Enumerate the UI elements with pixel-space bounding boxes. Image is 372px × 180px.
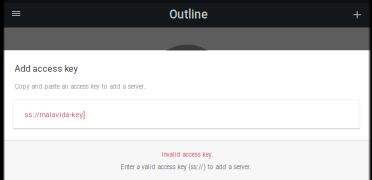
staticText: Copy and paste an access key to add a se… — [14, 83, 145, 90]
staticText: Invalid access key. — [161, 151, 213, 158]
staticText: Enter a valid access key (ss://) to add … — [120, 163, 251, 171]
staticText: Outline — [169, 7, 207, 21]
button[interactable]: Add server — [345, 3, 369, 27]
staticText: ss://malavida-key — [25, 110, 83, 119]
button[interactable]: Menu — [4, 1, 28, 25]
staticText: Add access key — [14, 63, 77, 74]
